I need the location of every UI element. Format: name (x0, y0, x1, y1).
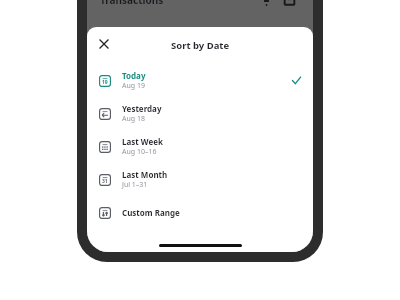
staticText: Yesterday (122, 103, 162, 114)
button[interactable]: 19 (87, 64, 313, 97)
staticText: Aug 19 (122, 81, 145, 91)
staticText: Last Month (122, 169, 168, 180)
staticText: Transactions (100, 0, 164, 7)
button[interactable]: 31 (87, 163, 313, 196)
staticText: 31 (102, 178, 108, 185)
staticText: Custom Range (122, 207, 180, 218)
button[interactable]: Filter (259, 0, 273, 7)
staticText: Sort by Date (171, 39, 230, 52)
button[interactable]: Close (93, 33, 115, 55)
staticText: Aug 18 (122, 114, 145, 124)
staticText: Aug 10–16 (122, 147, 157, 157)
button[interactable]: Yesterday (87, 97, 313, 130)
staticText: Last Week (122, 136, 163, 147)
button[interactable]: Custom Range (87, 196, 313, 229)
staticText: Today (122, 70, 146, 81)
button[interactable]: Last Week (87, 130, 313, 163)
staticText: Jul 1–31 (122, 180, 148, 190)
staticText: 19 (102, 79, 108, 86)
button[interactable]: Download (282, 0, 296, 7)
